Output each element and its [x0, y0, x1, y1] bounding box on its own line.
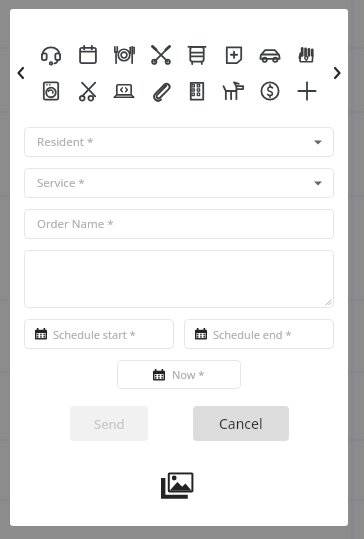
button[interactable]: Service * [24, 168, 334, 198]
button[interactable]: Resident * [24, 127, 334, 157]
button[interactable]: Schedule end * [184, 319, 334, 349]
button[interactable]: Bus [180, 38, 214, 72]
staticText: Now * [172, 367, 205, 382]
button[interactable]: Now * [117, 360, 241, 389]
button[interactable]: Car [253, 38, 287, 72]
staticText: Schedule end * [213, 327, 292, 342]
button[interactable]: Dining [107, 38, 141, 72]
staticText: Send [94, 415, 125, 433]
button[interactable]: Medical note [217, 38, 251, 72]
button[interactable]: Scissors [71, 74, 105, 108]
button[interactable]: Pet [217, 74, 251, 108]
button[interactable] [24, 250, 334, 308]
button[interactable]: Calendar [71, 38, 105, 72]
button[interactable]: Care [290, 38, 324, 72]
button[interactable]: Attachment [144, 74, 178, 108]
button[interactable]: Send [70, 406, 148, 441]
button[interactable]: Schedule start * [24, 319, 174, 349]
staticText: Service * [37, 175, 85, 191]
button[interactable]: Tech support [107, 74, 141, 108]
staticText: Resident * [37, 134, 94, 150]
staticText: Cancel [219, 414, 263, 433]
button[interactable]: Order Name * [24, 209, 334, 239]
button[interactable]: Next icons [326, 37, 348, 109]
button[interactable]: Cancel [193, 406, 289, 441]
button[interactable]: Payment [253, 74, 287, 108]
button[interactable]: Building [180, 74, 214, 108]
staticText: Schedule start * [53, 327, 136, 342]
button[interactable]: Laundry [34, 74, 68, 108]
button[interactable]: Previous icons [10, 37, 32, 109]
button[interactable]: Add photo [156, 463, 202, 509]
button[interactable]: Headset [34, 38, 68, 72]
button[interactable]: Tools [144, 38, 178, 72]
button[interactable]: Add [290, 74, 324, 108]
staticText: Order Name * [37, 216, 114, 232]
